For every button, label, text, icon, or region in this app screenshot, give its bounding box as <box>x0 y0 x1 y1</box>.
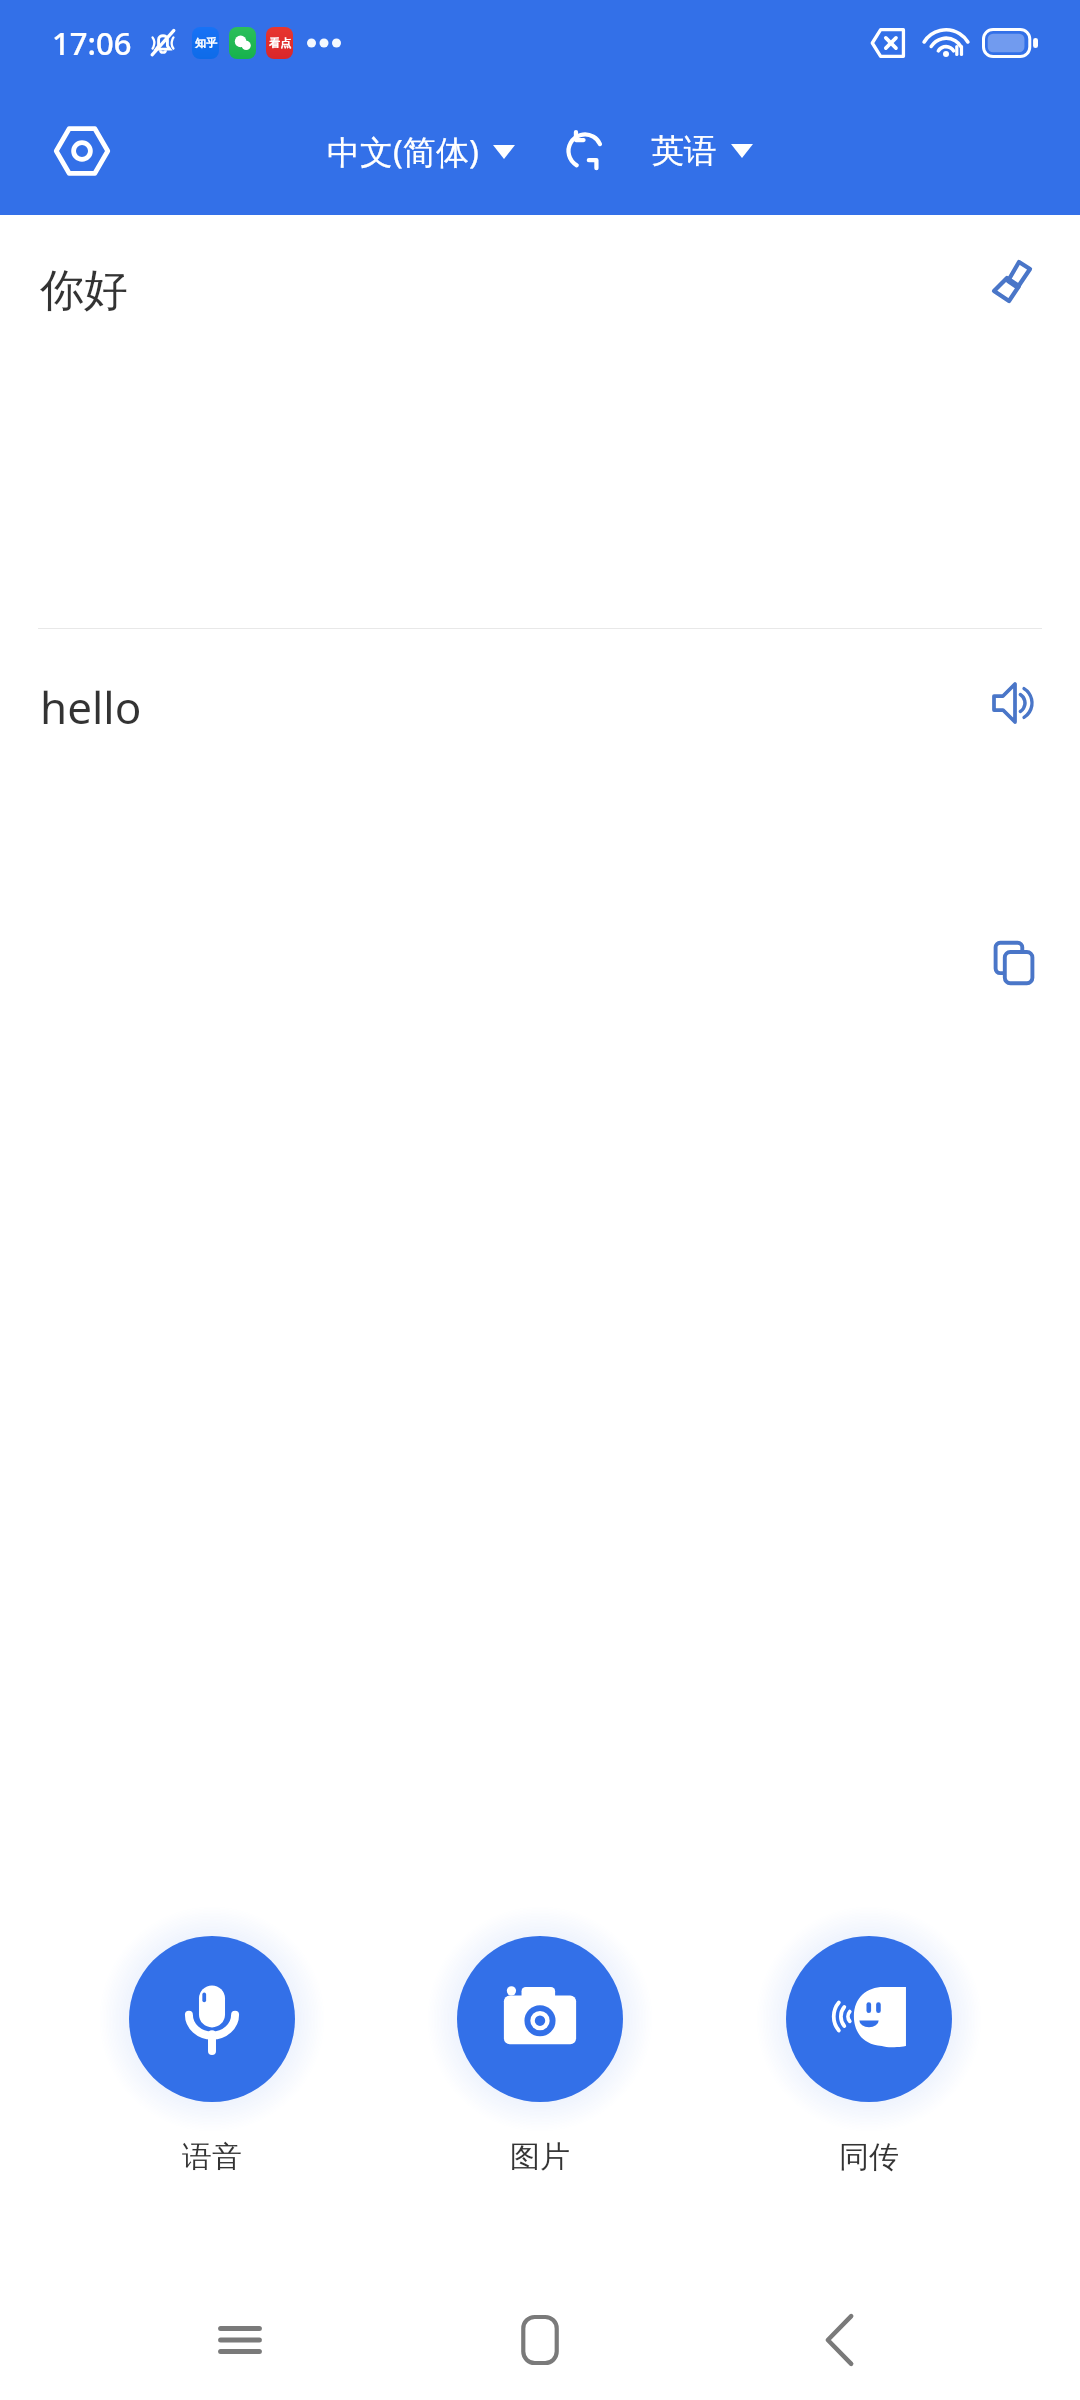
button[interactable]: Camera translate <box>399 1898 681 2184</box>
staticText: 你好 <box>40 263 128 318</box>
staticText: 知乎 <box>195 36 217 50</box>
button[interactable]: Voice input <box>71 1898 353 2184</box>
staticText: 英语 <box>651 130 717 172</box>
staticText: 看点 <box>269 36 291 50</box>
button[interactable]: Copy translation <box>970 919 1058 1007</box>
staticText: 中文(简体) <box>327 129 479 174</box>
button[interactable]: Clear text <box>970 237 1058 325</box>
button[interactable]: Simultaneous interpretation <box>728 1898 1010 2184</box>
button[interactable]: Recent apps <box>180 2280 300 2400</box>
staticText: 同传 <box>839 2138 899 2176</box>
button[interactable]: Back <box>780 2280 900 2400</box>
staticText: hello <box>40 677 142 737</box>
button[interactable]: Home <box>480 2280 600 2400</box>
staticText: 图片 <box>510 2138 570 2176</box>
staticText: 语音 <box>182 2138 242 2176</box>
button[interactable]: Baidu Translate home <box>36 105 128 197</box>
button[interactable]: Swap languages <box>549 115 621 187</box>
button[interactable]: 中文(简体) <box>321 119 521 184</box>
button[interactable]: Play pronunciation <box>970 659 1058 747</box>
staticText: 17:06 <box>52 22 132 64</box>
button[interactable]: 英语 <box>645 120 759 182</box>
